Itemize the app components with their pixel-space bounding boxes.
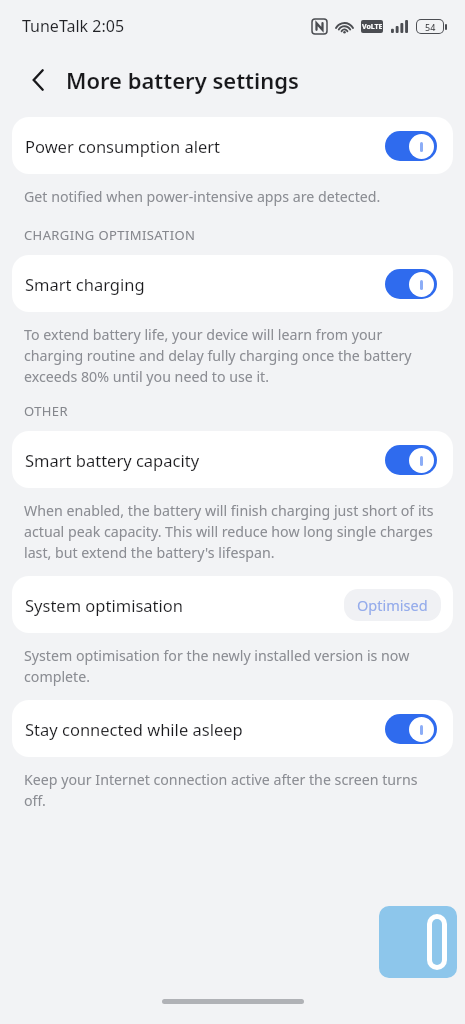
button[interactable]: Toggle on [385,131,437,161]
button[interactable]: Toggle on [385,269,437,299]
button[interactable]: Stay connected while asleep [12,700,453,757]
staticText: VoLTE [362,22,383,32]
staticText: System optimisation [25,594,183,616]
staticText: To extend battery life, your device will… [24,325,439,386]
staticText: TuneTalk 2:05 [22,15,125,37]
staticText: When enabled, the battery will finish ch… [24,501,439,562]
button[interactable]: Optimised [344,589,441,621]
button[interactable]: Smart battery capacity [12,431,453,488]
button[interactable]: Toggle on [385,445,437,475]
staticText: System optimisation for the newly instal… [24,646,439,686]
staticText: Smart charging [25,273,145,295]
staticText: Keep your Internet connection active aft… [24,770,439,810]
staticText: OTHER [24,402,68,420]
staticText: More battery settings [66,65,299,95]
staticText: Stay connected while asleep [25,718,243,740]
staticText: 54 [425,21,436,33]
staticText: Optimised [357,595,428,615]
button[interactable]: Toggle on [385,714,437,744]
staticText: Smart battery capacity [25,449,200,471]
button[interactable]: Smart charging [12,255,453,312]
staticText: Power consumption alert [25,135,221,157]
staticText: CHARGING OPTIMISATION [24,226,196,244]
button[interactable]: System optimisation [12,576,453,633]
button[interactable]: Back [18,60,58,100]
button[interactable]: Power consumption alert [12,117,453,174]
staticText: Get notified when power-intensive apps a… [24,187,381,206]
